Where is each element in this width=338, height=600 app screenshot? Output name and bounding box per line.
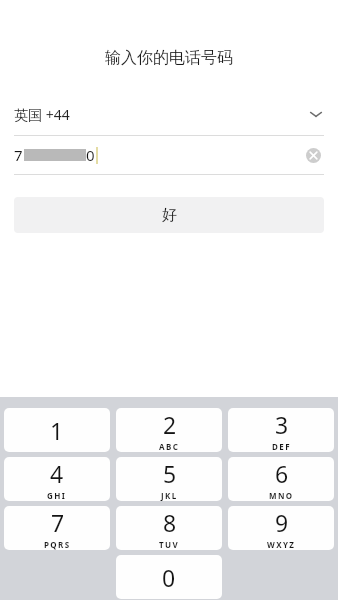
staticText: 1 <box>50 415 64 446</box>
staticText: 4 <box>50 458 64 489</box>
button[interactable]: 9 <box>228 506 334 550</box>
staticText: ABC <box>159 441 180 452</box>
staticText: GHI <box>47 490 67 501</box>
staticText: TUV <box>159 539 180 550</box>
staticText: DEF <box>272 441 291 452</box>
button[interactable]: 0 <box>116 555 222 599</box>
button[interactable]: 2 <box>116 408 222 452</box>
staticText: 0 <box>162 562 176 593</box>
button[interactable]: 4 <box>4 457 110 501</box>
staticText: WXYZ <box>267 539 296 550</box>
staticText: 英国 +44 <box>14 105 70 124</box>
button[interactable]: 好 <box>14 197 324 233</box>
staticText: 0 <box>86 145 95 165</box>
staticText: 3 <box>275 409 289 440</box>
other: Select country code <box>308 106 324 122</box>
staticText: 5 <box>163 458 177 489</box>
staticText: 8 <box>163 507 177 538</box>
button[interactable]: 7 <box>0 136 338 174</box>
button[interactable]: 7 <box>4 506 110 550</box>
button[interactable]: 英国 +44 <box>0 98 338 130</box>
staticText: 2 <box>163 409 177 440</box>
staticText: MNO <box>269 490 294 501</box>
staticText: 输入你的电话号码 <box>105 48 233 68</box>
button[interactable]: 6 <box>228 457 334 501</box>
staticText: 7 <box>51 507 65 538</box>
button[interactable]: 8 <box>116 506 222 550</box>
staticText: 9 <box>275 507 289 538</box>
staticText: 好 <box>162 206 177 225</box>
button[interactable]: Clear text <box>302 144 324 166</box>
button[interactable]: 5 <box>116 457 222 501</box>
staticText: 6 <box>275 458 289 489</box>
staticText: JKL <box>161 490 178 501</box>
staticText: 7 <box>14 145 23 165</box>
button[interactable]: 3 <box>228 408 334 452</box>
staticText: PQRS <box>44 539 71 550</box>
button[interactable]: 1 <box>4 408 110 452</box>
